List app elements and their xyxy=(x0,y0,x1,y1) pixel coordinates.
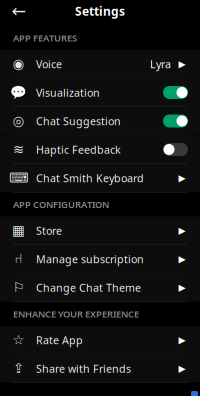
button[interactable]: ≋ xyxy=(0,135,200,163)
staticText: ⚐ xyxy=(12,280,24,295)
staticText: ENHANCE YOUR EXPERIENCE xyxy=(13,308,139,320)
button[interactable]: ⌨ xyxy=(0,164,200,192)
staticText: ⇪ xyxy=(13,361,24,376)
staticText: APP CONFIGURATION xyxy=(13,198,109,211)
staticText: Chat Suggestion xyxy=(36,114,121,128)
button[interactable]: ⇪ xyxy=(0,354,200,382)
staticText: ▶ xyxy=(178,335,185,345)
staticText: Store xyxy=(36,223,62,238)
staticText: Change Chat Theme xyxy=(36,280,141,295)
staticText: ▦ xyxy=(12,223,25,238)
staticText: ▶ xyxy=(178,282,185,293)
staticText: ▶ xyxy=(178,173,185,183)
staticText: ◉ xyxy=(12,56,24,71)
staticText: ▶ xyxy=(178,59,185,69)
staticText: ▶ xyxy=(178,363,185,374)
button[interactable]: Back xyxy=(8,0,30,22)
staticText: 💬 xyxy=(10,85,27,100)
button[interactable]: ⚐ xyxy=(0,273,200,301)
staticText: ⌨ xyxy=(9,170,28,185)
staticText: ⑁ xyxy=(14,252,22,265)
staticText: Share with Friends xyxy=(36,361,131,376)
staticText: Haptic Feedback xyxy=(36,142,121,157)
staticText: ▶ xyxy=(178,254,185,264)
staticText: ≋ xyxy=(13,142,24,157)
staticText: Settings xyxy=(75,3,125,19)
staticText: ← xyxy=(11,1,26,21)
staticText: Chat Smith Keyboard xyxy=(36,171,144,185)
staticText: Manage subscription xyxy=(36,252,144,266)
button[interactable]: ⑁ xyxy=(0,245,200,273)
staticText: Voice xyxy=(36,57,62,71)
button[interactable]: ◉ xyxy=(0,50,200,78)
staticText: APP FEATURES xyxy=(13,32,77,44)
button[interactable]: ☆ xyxy=(0,326,200,354)
button[interactable]: ◎ xyxy=(0,107,200,135)
staticText: ☆ xyxy=(12,332,24,347)
staticText: Visualization xyxy=(36,85,100,100)
staticText: Rate App xyxy=(36,333,83,347)
staticText: ◎ xyxy=(12,113,24,128)
staticText: Lyra xyxy=(150,57,171,71)
button[interactable]: ▦ xyxy=(0,216,200,244)
button[interactable]: 💬 xyxy=(0,78,200,106)
staticText: ▶ xyxy=(178,225,185,236)
